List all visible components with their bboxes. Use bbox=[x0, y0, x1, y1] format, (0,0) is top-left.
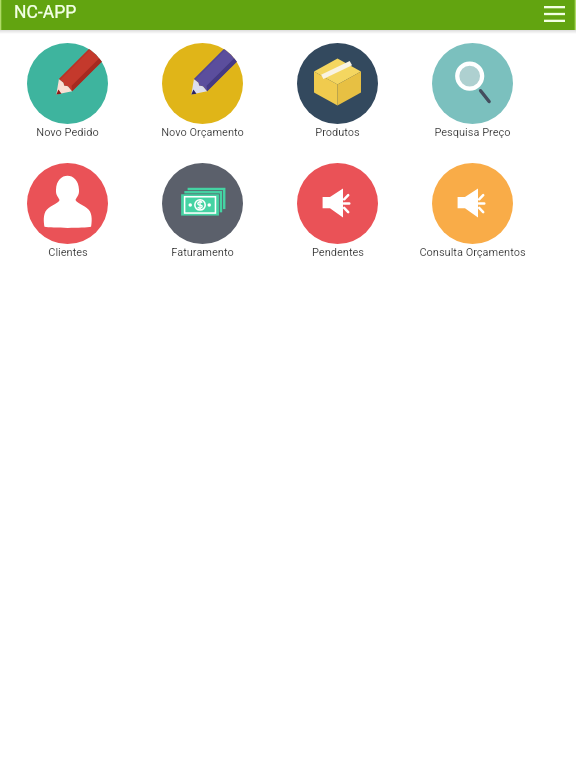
staticText: Novo Orçamento bbox=[161, 126, 244, 139]
button[interactable]: Consulta Orçamentos bbox=[405, 163, 540, 259]
staticText: Produtos bbox=[315, 126, 360, 139]
button[interactable]: Novo Pedido bbox=[0, 43, 135, 139]
button[interactable]: Pendentes bbox=[270, 163, 405, 259]
button[interactable]: Pesquisa Preço bbox=[405, 43, 540, 139]
staticText: Consulta Orçamentos bbox=[419, 246, 526, 259]
button[interactable]: Faturamento bbox=[135, 163, 270, 259]
staticText: Pendentes bbox=[312, 246, 364, 259]
staticText: Faturamento bbox=[171, 246, 234, 259]
staticText: Clientes bbox=[48, 246, 88, 259]
button[interactable]: Menu bbox=[544, 6, 565, 22]
staticText: Pesquisa Preço bbox=[434, 126, 511, 139]
button[interactable]: Clientes bbox=[0, 163, 135, 259]
button[interactable]: Novo Orçamento bbox=[135, 43, 270, 139]
staticText: Novo Pedido bbox=[36, 126, 99, 139]
staticText: NC-APP bbox=[14, 2, 77, 23]
button[interactable]: Produtos bbox=[270, 43, 405, 139]
